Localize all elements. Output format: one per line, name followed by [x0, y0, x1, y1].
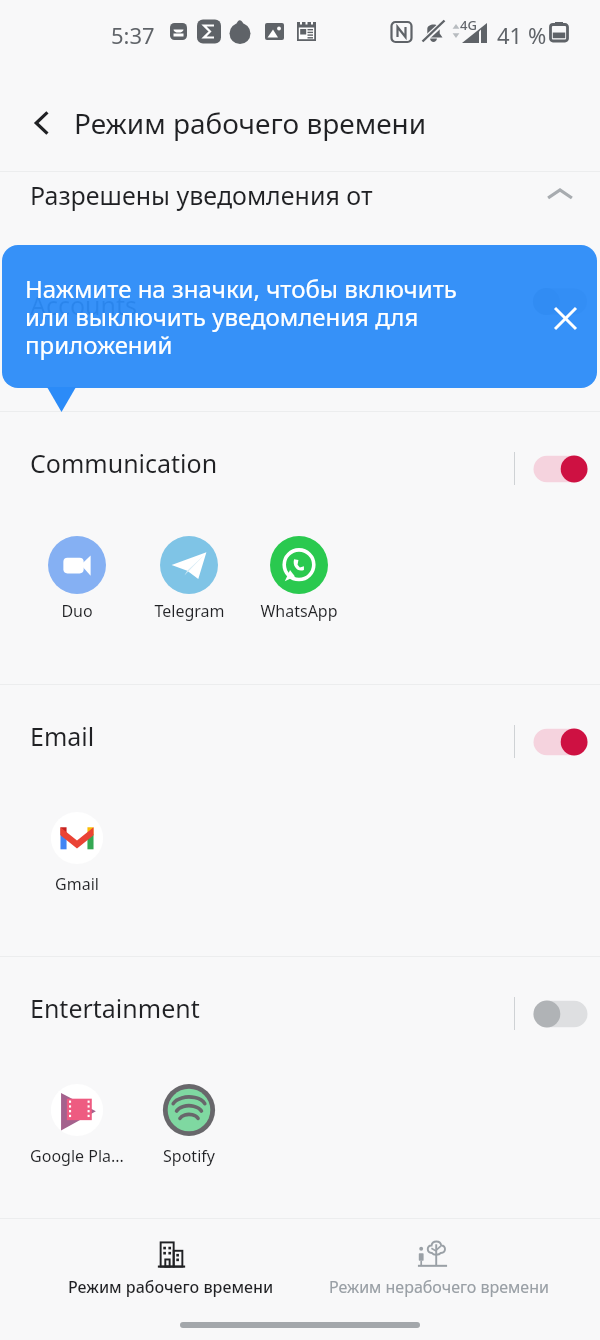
- button[interactable]: Duo: [22, 536, 132, 621]
- button[interactable]: Режим нерабочего времени: [289, 1219, 589, 1314]
- staticText: Spotify: [163, 1145, 215, 1166]
- button[interactable]: Google Pla...: [22, 1081, 132, 1166]
- button[interactable]: Telegram: [134, 536, 244, 621]
- button[interactable]: Нажмите на значки, чтобы включить или вы…: [2, 245, 597, 388]
- button[interactable]: Entertainment: [0, 970, 600, 1046]
- button[interactable]: Close tip: [541, 294, 590, 343]
- staticText: 41 %: [497, 20, 547, 50]
- staticText: 5:37: [111, 20, 155, 50]
- staticText: Telegram: [154, 600, 225, 621]
- button[interactable]: Email on: [525, 720, 595, 764]
- staticText: WhatsApp: [260, 600, 338, 621]
- staticText: Режим рабочего времени: [74, 104, 427, 142]
- staticText: Режим нерабочего времени: [329, 1276, 549, 1298]
- staticText: Duo: [61, 600, 93, 621]
- button[interactable]: Spotify: [134, 1081, 244, 1166]
- button[interactable]: Email: [0, 698, 600, 774]
- staticText: Entertainment: [30, 991, 200, 1025]
- button[interactable]: WhatsApp: [244, 536, 354, 621]
- button[interactable]: Collapse section: [537, 171, 583, 217]
- staticText: Email: [30, 719, 95, 753]
- staticText: Accounts: [30, 288, 138, 322]
- button[interactable]: Communication: [0, 425, 600, 501]
- button[interactable]: Entertainment off: [525, 992, 595, 1036]
- button[interactable]: Back: [15, 97, 67, 149]
- button[interactable]: Gmail: [22, 809, 132, 894]
- staticText: Разрешены уведомления от: [30, 178, 373, 212]
- staticText: Google Pla...: [30, 1145, 124, 1166]
- button[interactable]: Режим рабочего времени: [21, 1219, 321, 1314]
- button[interactable]: Communication on: [525, 447, 595, 491]
- staticText: Communication: [30, 446, 218, 480]
- staticText: 4G: [460, 16, 477, 34]
- staticText: Gmail: [55, 873, 99, 894]
- staticText: Нажмите на значки, чтобы включить или вы…: [25, 272, 485, 361]
- staticText: Режим рабочего времени: [68, 1276, 274, 1298]
